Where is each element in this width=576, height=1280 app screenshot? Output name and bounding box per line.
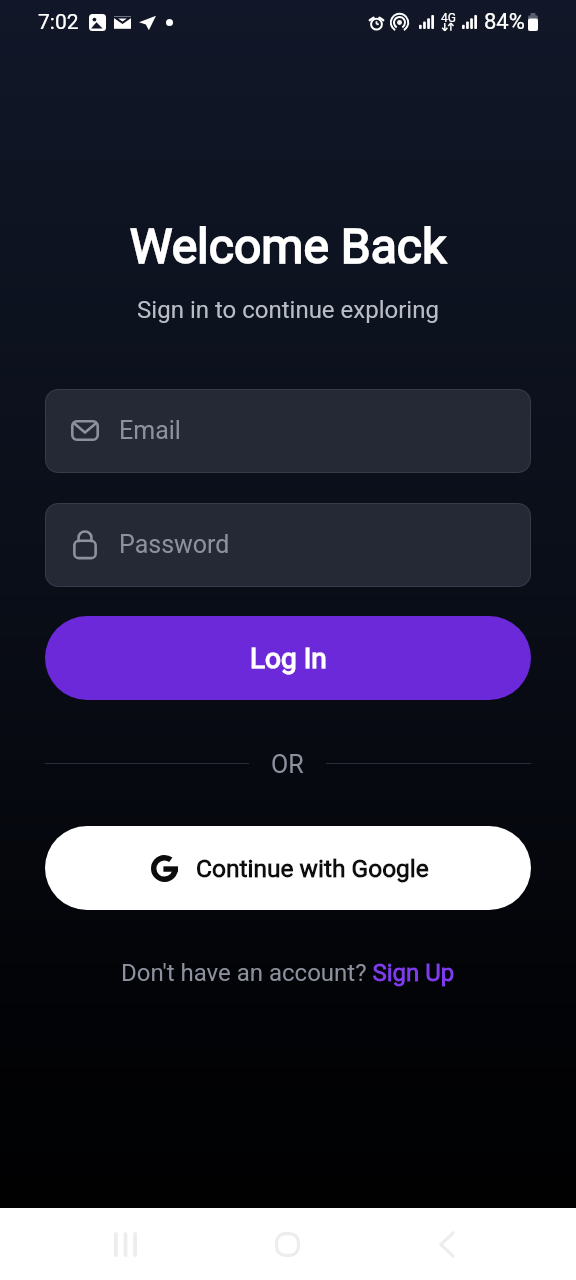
staticText: 4G (441, 11, 456, 25)
staticText: OR (271, 750, 304, 776)
staticText: Password (119, 530, 230, 559)
staticText: Welcome Back (0, 218, 576, 274)
staticText: Log In (250, 642, 327, 675)
staticText: Continue with Google (196, 854, 429, 883)
button[interactable]: Password (45, 503, 531, 587)
staticText: 7:02 (38, 10, 79, 35)
staticText: Sign in to continue exploring (0, 296, 576, 324)
button[interactable]: Log In (45, 616, 531, 700)
staticText: Email (119, 416, 181, 445)
staticText: Don't have an account? Sign Up (121, 959, 455, 987)
button[interactable]: Email (45, 389, 531, 473)
button[interactable]: Continue with Google (45, 826, 531, 910)
staticText: 84% (484, 9, 525, 35)
button[interactable]: Don't have an account? Sign Up (121, 959, 455, 987)
